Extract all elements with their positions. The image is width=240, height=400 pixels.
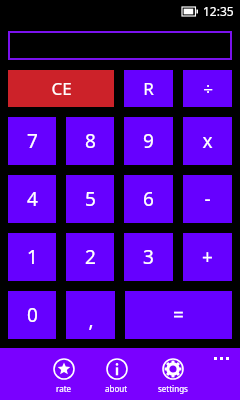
staticText: settings [158,383,188,394]
button[interactable]: CE [8,70,114,107]
staticText: 2 [85,244,96,270]
staticText: 7 [27,128,38,154]
button[interactable]: 4 [8,175,56,223]
button[interactable]: = [125,291,232,339]
button[interactable]: x [183,117,232,165]
button[interactable]: Rate [47,358,81,394]
button[interactable]: About [99,358,134,394]
button[interactable] [8,31,232,60]
staticText: 8 [85,128,96,154]
staticText: , [88,307,94,333]
button[interactable]: 5 [66,175,114,223]
button[interactable]: 9 [124,117,173,165]
staticText: 0 [27,302,38,328]
button[interactable]: 7 [8,117,56,165]
staticText: R [143,77,154,100]
button[interactable]: 3 [124,233,173,281]
staticText: CE [51,77,72,100]
staticText: x [202,128,213,154]
staticText: 5 [85,186,96,212]
staticText: 12:35 [203,3,234,19]
staticText: 6 [143,186,154,212]
button[interactable]: 6 [124,175,173,223]
button[interactable]: ÷ [183,70,232,107]
button[interactable]: , [66,291,115,339]
button[interactable]: 0 [8,291,56,339]
button[interactable]: - [183,175,232,223]
staticText: about [105,383,128,394]
button[interactable]: + [183,233,232,281]
staticText: - [204,186,211,212]
staticText: + [202,244,213,270]
staticText: = [173,302,184,328]
staticText: 9 [143,128,154,154]
staticText: 1 [27,244,38,270]
staticText: ÷ [203,77,213,100]
staticText: 4 [27,186,38,212]
button[interactable]: R [124,70,173,107]
button[interactable]: 2 [66,233,114,281]
staticText: 3 [143,244,154,270]
button[interactable]: 8 [66,117,114,165]
button[interactable]: More options [211,354,232,363]
button[interactable]: Settings [152,358,194,394]
staticText: rate [56,383,72,394]
button[interactable]: 1 [8,233,56,281]
